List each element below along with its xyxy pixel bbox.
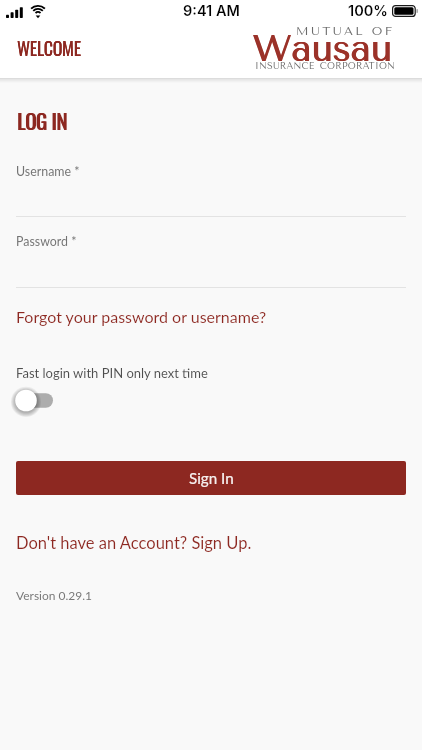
staticText: Username * (16, 164, 80, 179)
staticText: WELCOME (17, 35, 81, 62)
staticText: Version 0.29.1 (16, 588, 93, 602)
button[interactable]: Don't have an Account? Sign Up. (0, 531, 422, 555)
staticText: LOG IN (17, 106, 68, 136)
staticText: LOG IN (17, 106, 68, 136)
staticText: Password * (16, 234, 77, 249)
button[interactable]: Fast login with PIN toggle (10, 390, 66, 414)
staticText: Wausau (253, 27, 393, 70)
staticText: Forgot your password or username? (16, 307, 267, 326)
staticText: 100% (348, 2, 388, 20)
staticText: 9:41 AM (183, 2, 240, 20)
staticText: Fast login with PIN only next time (16, 365, 208, 381)
staticText: WELCOME (17, 35, 81, 62)
staticText: Wausau (252, 27, 392, 70)
button[interactable]: Forgot your password or username? (0, 305, 422, 329)
staticText: WELCOME (17, 35, 81, 62)
staticText: Wausau (253, 27, 393, 70)
button[interactable]: Sign In (16, 461, 406, 495)
staticText: LOG IN (18, 106, 69, 136)
staticText: INSURANCE CORPORATION (255, 61, 396, 72)
staticText: Sign In (189, 469, 234, 487)
staticText: MUTUAL OF (296, 24, 395, 38)
staticText: Wausau (252, 27, 392, 70)
staticText: Don't have an Account? Sign Up. (16, 533, 252, 553)
